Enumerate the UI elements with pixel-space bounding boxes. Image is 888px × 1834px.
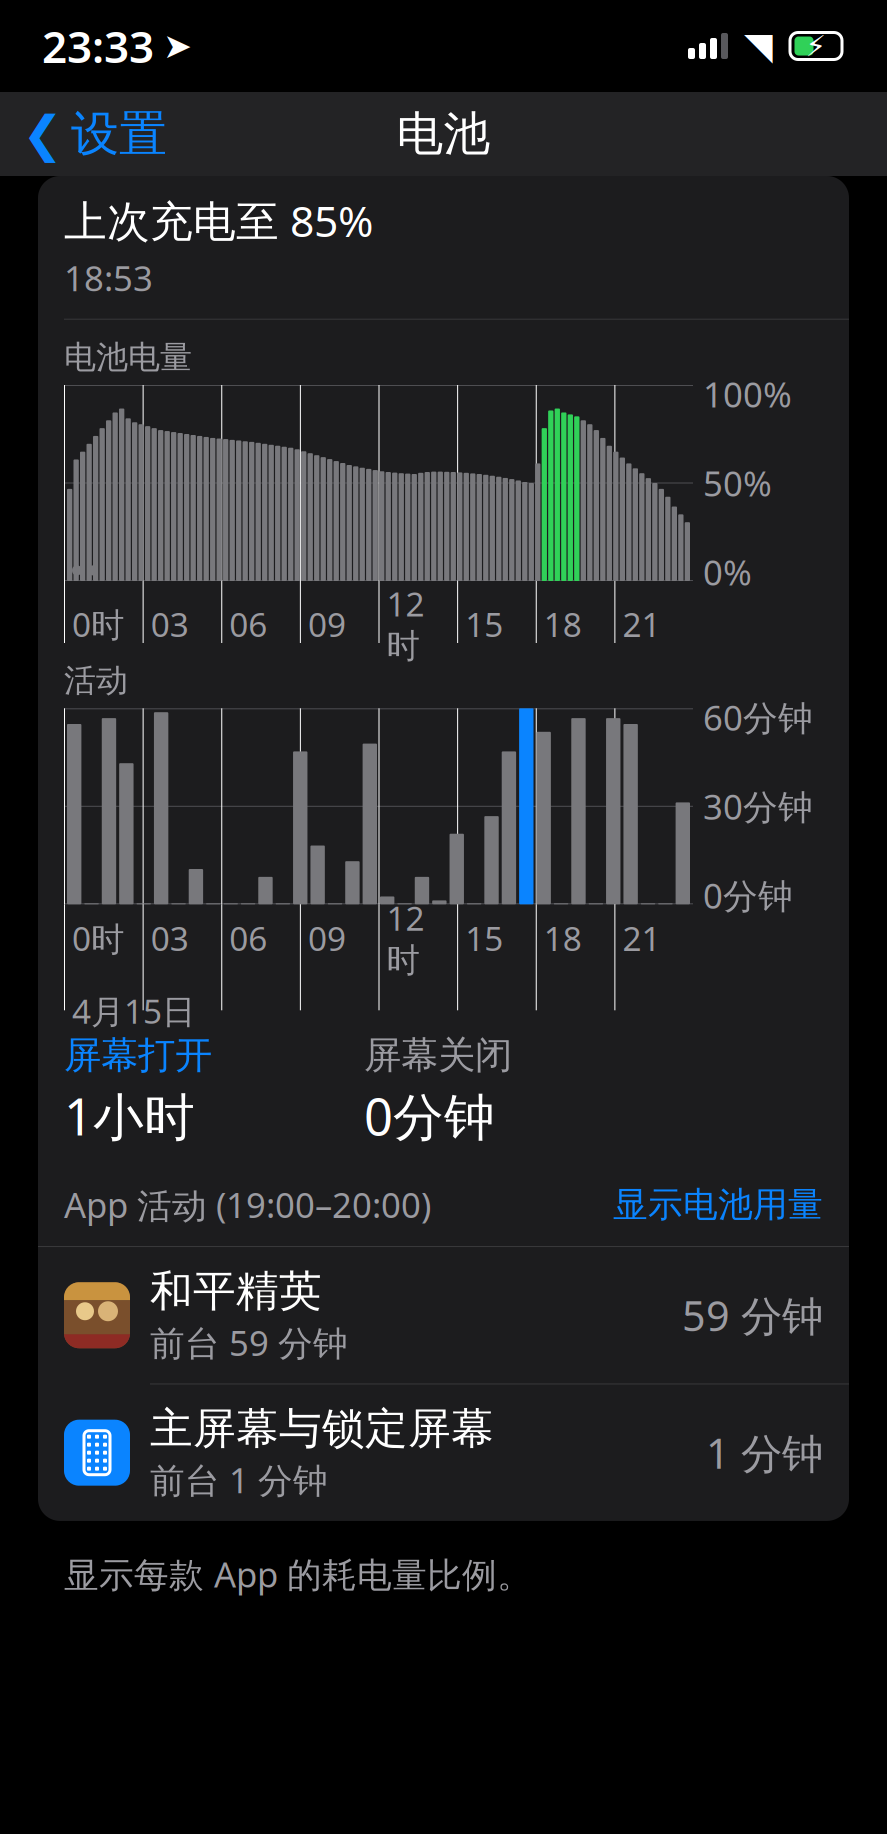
staticText: 电池 [396,105,490,163]
staticText: 显示每款 App 的耗电量比例。 [64,1551,532,1597]
staticText: 显示电池用量 [613,1183,823,1226]
staticText: ◥ [744,25,773,67]
staticText: 09 [308,916,346,960]
staticText: 15 [465,602,503,646]
staticText: 09 [308,602,346,646]
staticText: 0分钟 [703,872,793,918]
staticText: 0时 [72,916,124,960]
staticText: 30分钟 [703,783,813,829]
staticText: 前台 1 分钟 [150,1457,328,1503]
staticText: 1小时 [64,1082,195,1149]
button[interactable]: 显示电池用量 [603,1177,823,1232]
staticText: 上次充电至 85% [64,192,373,249]
staticText: 4月15日 [72,989,195,1033]
staticText: 06 [229,916,267,960]
button[interactable]: 主屏幕与锁定屏幕 [38,1384,849,1521]
staticText: 屏幕关闭 [364,1032,512,1078]
staticText: 1 分钟 [706,1425,823,1480]
staticText: 21 [622,602,660,646]
button[interactable]: 和平精英 [38,1247,849,1383]
staticText: 100% [703,371,792,417]
staticText: 活动 [64,661,128,700]
staticText: 03 [151,602,189,646]
staticText: 18 [544,602,582,646]
staticText: 12时 [386,896,424,981]
staticText: ⚡︎ [805,29,826,63]
staticText: 主屏幕与锁定屏幕 [150,1402,494,1455]
staticText: 设置 [71,104,167,163]
staticText: 0% [703,549,752,595]
staticText: 0分钟 [364,1082,495,1149]
staticText: 和平精英 [150,1265,322,1317]
staticText: App 活动 (19:00–20:00) [64,1182,431,1228]
staticText: 03 [151,916,189,960]
staticText: 18:53 [64,255,153,301]
staticText: 前台 59 分钟 [150,1319,348,1365]
staticText: 06 [229,602,267,646]
staticText: 60分钟 [703,694,813,740]
staticText: ❮ [22,106,63,162]
staticText: 0时 [72,602,124,646]
staticText: 21 [622,916,660,960]
staticText: 18 [544,916,582,960]
staticText: 12时 [386,581,424,667]
staticText: 电池电量 [64,338,192,377]
staticText: 屏幕打开 [64,1032,212,1078]
staticText: 15 [465,916,503,960]
staticText: 23:33 [42,17,154,75]
staticText: 50% [703,460,772,506]
staticText: 59 分钟 [682,1288,823,1343]
button[interactable]: ❮ [0,96,177,171]
staticText: ➤ [163,26,192,66]
